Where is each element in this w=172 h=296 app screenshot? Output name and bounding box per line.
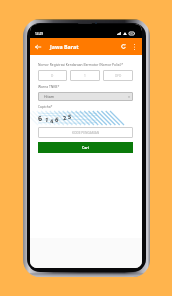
staticText: Nomor Registrasi Kendaraan Bermotor (Nom…: [38, 62, 124, 66]
button[interactable]: 1: [70, 70, 100, 81]
staticText: 6: [37, 114, 43, 123]
staticText: D: [51, 74, 54, 78]
staticText: Warna TNKB*: [38, 84, 60, 88]
staticText: Jawa Barat: [50, 43, 79, 50]
button[interactable]: KODE PENGAMAN: [38, 127, 133, 138]
staticText: 1: [44, 116, 50, 124]
staticText: Cari: [82, 145, 89, 150]
staticText: 5: [68, 113, 72, 121]
staticText: 4: [50, 117, 54, 124]
staticText: 14:29: [35, 32, 44, 36]
staticText: Hitam: [44, 94, 54, 99]
staticText: DFD: [115, 74, 122, 78]
button[interactable]: Refresh: [118, 41, 129, 52]
button[interactable]: Hitam: [38, 92, 133, 101]
staticText: Captcha*: [38, 104, 53, 108]
button[interactable]: Back: [33, 42, 43, 52]
button[interactable]: Cari: [38, 142, 133, 153]
staticText: 6: [54, 116, 60, 124]
button[interactable]: D: [38, 70, 67, 81]
button[interactable]: More options: [129, 41, 140, 52]
staticText: KODE PENGAMAN: [72, 131, 100, 135]
button[interactable]: DFD: [103, 70, 133, 81]
staticText: 2: [62, 114, 67, 122]
staticText: 1: [84, 74, 86, 78]
